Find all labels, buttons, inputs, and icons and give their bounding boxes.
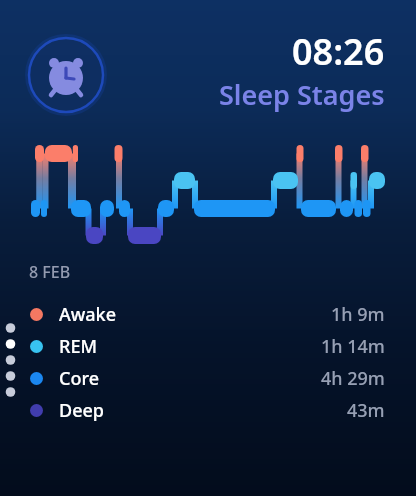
staticText: Sleep Stages: [219, 76, 385, 113]
button[interactable]: Deep: [30, 394, 385, 426]
staticText: REM: [59, 334, 97, 359]
staticText: Awake: [59, 302, 117, 327]
button[interactable]: REM: [30, 330, 385, 362]
staticText: 08:26: [292, 27, 385, 76]
staticText: 43m: [347, 398, 385, 423]
button[interactable]: Core: [30, 362, 385, 394]
staticText: 4h 29m: [321, 366, 385, 391]
button[interactable]: [28, 37, 104, 113]
staticText: 8 FEB: [29, 261, 71, 283]
staticText: 1h 9m: [331, 302, 385, 327]
staticText: 1h 14m: [321, 334, 385, 359]
staticText: Core: [59, 366, 100, 391]
staticText: Deep: [59, 398, 104, 423]
button[interactable]: Awake: [30, 298, 385, 330]
